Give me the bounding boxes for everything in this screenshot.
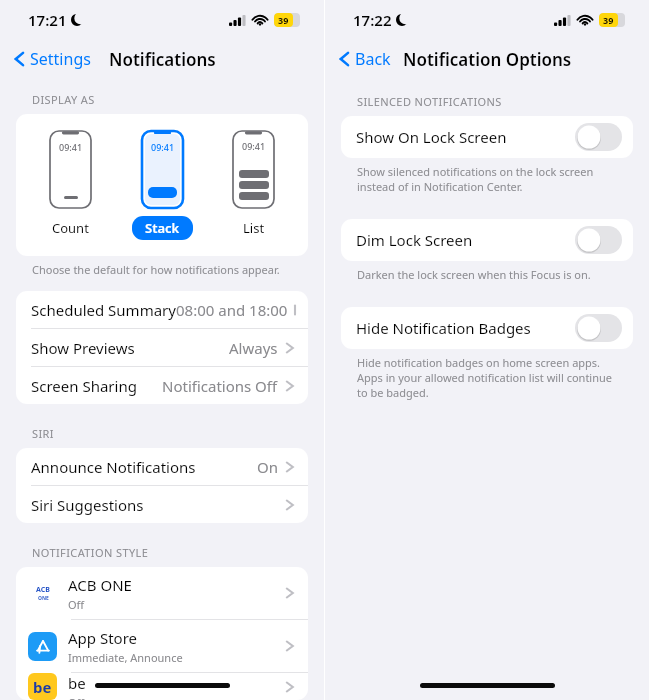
staticText: Screen Sharing [31,376,137,396]
staticText: SILENCED NOTIFICATIONS [357,94,502,109]
button[interactable]: Back [335,44,395,74]
button[interactable]: Settings [10,44,95,74]
button[interactable]: Siri Suggestions [16,486,308,523]
staticText: Scheduled Summary [31,300,176,320]
staticText: Count [52,219,89,237]
staticText: Hide notification badges on home screen … [357,355,623,400]
staticText: NOTIFICATION STYLE [32,545,149,560]
button[interactable]: 09:41 [43,128,98,242]
staticText: ACB ONE [68,575,132,595]
button[interactable]: Hide Notification Badges [341,307,633,349]
staticText: Off [68,695,85,700]
staticText: Show silenced notifications on the lock … [357,164,623,194]
button[interactable]: App Store [16,620,308,673]
staticText: Dim Lock Screen [356,230,473,250]
button[interactable]: ACB [16,567,308,620]
other: Hide Notification Badges [575,314,622,342]
other: Dim Lock Screen [575,226,622,254]
staticText: App Store [68,628,138,648]
button[interactable]: 09:41 [126,128,199,242]
staticText: Notifications [109,48,216,71]
staticText: Siri Suggestions [31,495,144,515]
staticText: Show Previews [31,338,135,358]
staticText: 39 [603,14,614,26]
button[interactable]: Scheduled Summary [16,291,308,329]
staticText: Notifications Off [162,376,278,396]
staticText: On [257,457,278,477]
staticText: Announce Notifications [31,457,196,477]
staticText: Always [229,338,278,358]
staticText: DISPLAY AS [32,92,95,107]
button[interactable]: 09:41 [226,128,281,242]
button[interactable]: Show On Lock Screen [341,116,633,158]
staticText: Back [355,48,391,70]
staticText: ONE [38,595,49,602]
staticText: 09:41 [59,141,83,153]
staticText: 17:22 [353,10,392,30]
staticText: Show On Lock Screen [356,127,507,147]
staticText: Notification Options [403,48,572,71]
staticText: Darken the lock screen when this Focus i… [357,267,591,282]
button[interactable]: Dim Lock Screen [341,219,633,261]
staticText: 17:21 [28,10,67,30]
staticText: Off [68,597,85,612]
staticText: Hide Notification Badges [356,318,531,338]
button[interactable]: Show Previews [16,329,308,367]
staticText: 08:00 and 18:00 [176,300,288,320]
button[interactable]: Screen Sharing [16,367,308,404]
other: Show On Lock Screen [575,123,622,151]
staticText: 09:41 [151,141,175,153]
staticText: List [243,219,265,237]
staticText: 09:41 [242,140,266,152]
button[interactable]: be [16,673,308,700]
button[interactable]: Announce Notifications [16,448,308,486]
staticText: ACB [36,585,50,595]
staticText: be [68,673,86,693]
staticText: Stack [145,219,180,237]
staticText: Immediate, Announce [68,650,183,665]
staticText: 39 [278,14,289,26]
staticText: Choose the default for how notifications… [32,262,280,277]
staticText: be [33,677,52,697]
staticText: Settings [30,48,91,70]
staticText: SIRI [32,426,54,441]
